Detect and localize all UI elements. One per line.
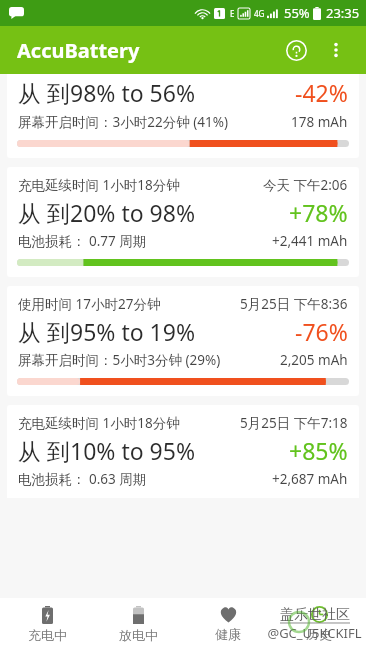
staticText: AccuBattery <box>17 37 140 64</box>
staticText: 23:35 <box>326 4 360 22</box>
staticText: 55% <box>284 4 310 22</box>
staticText: 屏幕开启时间：3小时22分钟 (41%) <box>18 113 228 131</box>
button[interactable]: Health <box>184 598 272 650</box>
staticText: 5月25日 下午8:36 <box>240 295 348 313</box>
staticText: 放电中 <box>119 627 158 643</box>
staticText: 5月25日 下午7:18 <box>240 414 348 432</box>
staticText: +78% <box>289 197 348 228</box>
button[interactable]: More options <box>316 30 356 70</box>
staticText: 今天 下午2:06 <box>263 176 348 194</box>
staticText: E <box>230 8 235 19</box>
staticText: 2,205 mAh <box>280 351 348 369</box>
staticText: 电池损耗： 0.77 周期 <box>18 232 147 250</box>
staticText: -76% <box>295 316 348 347</box>
staticText: 4G <box>254 8 265 19</box>
staticText: 充电延续时间 1小时18分钟 <box>18 176 180 194</box>
staticText: 历史 <box>306 626 332 642</box>
staticText: 从 到20% to 98% <box>18 197 289 228</box>
button[interactable]: 使用时间 17小时27分钟 <box>7 286 359 396</box>
button[interactable]: 从 到98% to 56% <box>7 74 359 158</box>
staticText: @GC_U5KCKIFL <box>267 624 362 642</box>
staticText: 从 到98% to 56% <box>18 77 295 108</box>
staticText: -42% <box>295 77 348 108</box>
staticText: 屏幕开启时间：5小时3分钟 (29%) <box>18 351 221 369</box>
staticText: 178 mAh <box>291 113 348 131</box>
staticText: +85% <box>289 435 348 466</box>
staticText: 充电延续时间 1小时18分钟 <box>18 414 180 432</box>
button[interactable]: History <box>275 598 363 650</box>
button[interactable]: 充电延续时间 1小时18分钟 <box>7 405 359 498</box>
button[interactable]: 充电延续时间 1小时18分钟 <box>7 167 359 277</box>
staticText: 健康 <box>215 626 241 642</box>
button[interactable]: Charging <box>3 598 91 650</box>
button[interactable]: Help <box>276 30 316 70</box>
staticText: 电池损耗： 0.63 周期 <box>18 470 147 488</box>
button[interactable]: Discharging <box>94 598 182 650</box>
staticText: +2,441 mAh <box>272 232 348 250</box>
staticText: 从 到95% to 19% <box>18 316 295 347</box>
staticText: 盖乐世社区 <box>280 606 350 624</box>
staticText: +2,687 mAh <box>272 470 348 488</box>
staticText: 从 到10% to 95% <box>18 435 289 466</box>
staticText: 使用时间 17小时27分钟 <box>18 295 161 313</box>
staticText: 充电中 <box>28 627 67 643</box>
